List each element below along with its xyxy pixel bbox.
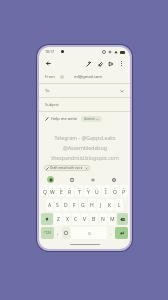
staticText: 3 bbox=[60, 186, 62, 189]
button[interactable]: Enter bbox=[115, 227, 128, 239]
staticText: W bbox=[50, 189, 55, 196]
button[interactable]: H bbox=[88, 199, 96, 211]
button[interactable]: B bbox=[90, 213, 98, 225]
button[interactable]: 4 bbox=[66, 185, 74, 197]
staticText: 5 bbox=[78, 186, 80, 189]
button[interactable]: Space bbox=[71, 227, 107, 239]
staticText: ml@gmail.com bbox=[74, 74, 103, 79]
button[interactable]: 7 bbox=[93, 185, 101, 197]
button[interactable]: ?123 bbox=[41, 227, 54, 239]
staticText: 8 bbox=[105, 186, 107, 189]
button[interactable]: F bbox=[70, 199, 78, 211]
staticText: 10:17 bbox=[45, 49, 54, 54]
button[interactable]: N bbox=[99, 213, 107, 225]
staticText: N bbox=[101, 216, 105, 223]
button[interactable]: From bbox=[39, 70, 130, 84]
button[interactable]: S bbox=[54, 199, 61, 211]
staticText: 7 bbox=[96, 186, 98, 189]
staticText: thespandroid.blogspot.com bbox=[51, 154, 119, 161]
staticText: M bbox=[110, 216, 115, 223]
staticText: L bbox=[118, 202, 121, 209]
button[interactable]: J bbox=[97, 199, 105, 211]
staticText: P bbox=[122, 189, 126, 196]
button[interactable]: 0 bbox=[120, 185, 128, 197]
button[interactable]: V bbox=[81, 213, 89, 225]
button[interactable]: Help me write bbox=[45, 116, 78, 121]
staticText: Telegram - @GappsLeaks bbox=[54, 134, 116, 141]
staticText: From bbox=[45, 74, 55, 79]
button[interactable]: More options bbox=[116, 58, 126, 68]
button[interactable]: Send bbox=[105, 58, 116, 69]
staticText: 6 bbox=[87, 186, 89, 189]
button[interactable]: 9 bbox=[111, 185, 119, 197]
staticText: 9 bbox=[114, 186, 116, 189]
button[interactable]: Gemini bbox=[47, 176, 54, 183]
button[interactable]: 2 bbox=[49, 185, 56, 197]
button[interactable]: Emoji bbox=[62, 227, 70, 239]
staticText: J bbox=[100, 202, 102, 209]
button[interactable]: 5 bbox=[75, 185, 83, 197]
staticText: R bbox=[68, 189, 72, 196]
staticText: U bbox=[95, 189, 99, 196]
button[interactable]: X bbox=[63, 213, 71, 225]
button[interactable]: 3 bbox=[57, 185, 65, 197]
button[interactable]: Settings bbox=[110, 176, 117, 183]
staticText: I bbox=[105, 189, 107, 196]
button[interactable]: 6 bbox=[84, 185, 92, 197]
staticText: E bbox=[60, 189, 63, 196]
staticText: F bbox=[73, 202, 76, 209]
staticText: @Assembledebug bbox=[63, 144, 107, 151]
button[interactable]: G bbox=[79, 199, 87, 211]
staticText: K bbox=[108, 202, 112, 209]
staticText: V bbox=[83, 216, 87, 223]
button[interactable]: Draft email with voice bbox=[44, 165, 90, 171]
staticText: To bbox=[45, 88, 50, 93]
button[interactable]: Period bbox=[108, 227, 114, 239]
staticText: G bbox=[81, 202, 85, 209]
staticText: 1 bbox=[44, 186, 46, 189]
staticText: Subject bbox=[45, 102, 59, 107]
staticText: Gemini bbox=[84, 117, 95, 121]
staticText: Q bbox=[43, 189, 47, 196]
button[interactable]: Shift bbox=[41, 213, 53, 225]
staticText: D bbox=[64, 202, 68, 209]
button[interactable]: D bbox=[62, 199, 69, 211]
staticText: C bbox=[74, 216, 78, 223]
staticText: H bbox=[90, 202, 94, 209]
button[interactable]: To bbox=[39, 84, 130, 98]
button[interactable]: 8 bbox=[102, 185, 110, 197]
button[interactable]: Z bbox=[54, 213, 62, 225]
staticText: 2 bbox=[52, 186, 54, 189]
button[interactable]: Help me write bbox=[83, 58, 94, 69]
button[interactable]: Clipboard bbox=[68, 176, 75, 183]
staticText: Z bbox=[57, 216, 60, 223]
staticText: X bbox=[66, 216, 69, 223]
button[interactable]: K bbox=[106, 199, 114, 211]
staticText: 4 bbox=[69, 186, 71, 189]
button[interactable]: Attach file bbox=[94, 58, 105, 69]
button[interactable]: C bbox=[72, 213, 80, 225]
button[interactable]: A bbox=[46, 199, 53, 211]
button[interactable]: Back bbox=[43, 58, 53, 68]
button[interactable]: Voice input bbox=[89, 176, 96, 183]
staticText: 0 bbox=[123, 186, 125, 189]
staticText: G bbox=[88, 231, 91, 236]
staticText: T bbox=[78, 189, 81, 196]
button[interactable]: Backspace bbox=[117, 213, 128, 225]
staticText: A bbox=[48, 202, 52, 209]
staticText: . bbox=[110, 230, 112, 236]
staticText: Help me write bbox=[51, 116, 78, 121]
staticText: Y bbox=[87, 189, 90, 196]
button[interactable]: Gemini bbox=[81, 116, 102, 122]
staticText: O bbox=[113, 189, 117, 196]
staticText: S bbox=[56, 202, 59, 209]
staticText: ?123 bbox=[44, 231, 51, 235]
staticText: B bbox=[92, 216, 96, 223]
staticText: , bbox=[57, 230, 59, 236]
button[interactable]: L bbox=[115, 199, 123, 211]
button[interactable]: M bbox=[108, 213, 116, 225]
staticText: Draft email with voice bbox=[50, 166, 83, 170]
button[interactable]: 1 bbox=[41, 185, 48, 197]
button[interactable]: Comma bbox=[55, 227, 61, 239]
button[interactable]: Subject bbox=[39, 98, 130, 112]
